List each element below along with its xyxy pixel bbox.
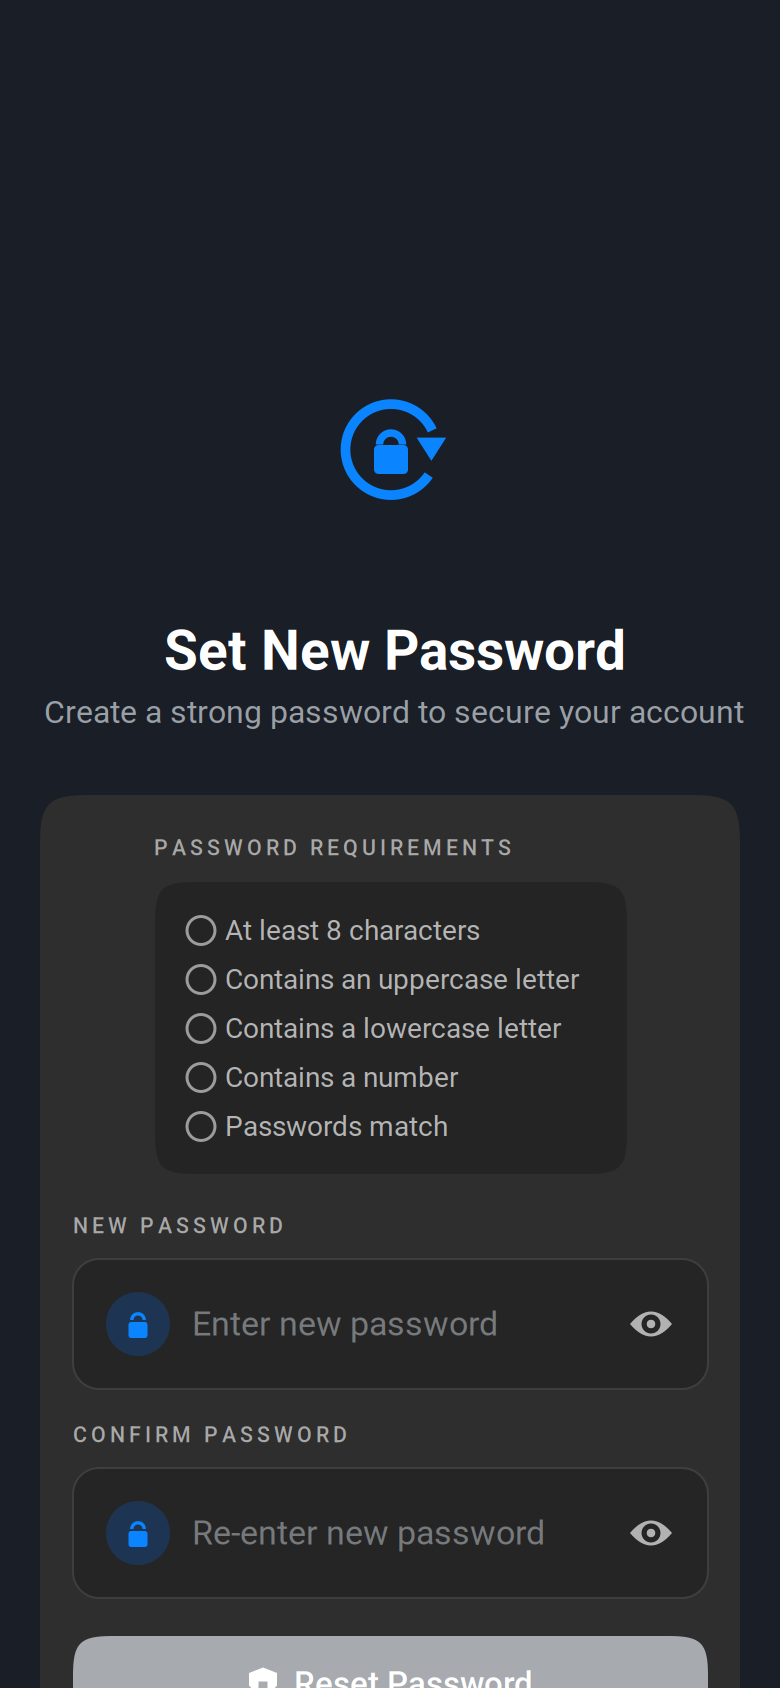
staticText: Re-enter new password <box>192 1513 545 1553</box>
button[interactable]: Show confirm password <box>622 1504 680 1562</box>
staticText: Contains a lowercase letter <box>225 1012 561 1045</box>
staticText: At least 8 characters <box>225 914 480 947</box>
staticText: Contains an uppercase letter <box>225 963 579 996</box>
staticText: Enter new password <box>192 1304 498 1344</box>
button[interactable]: Show new password <box>622 1295 680 1353</box>
staticText: P A S S W O R D R E Q U I R E M E N T S <box>154 835 511 860</box>
staticText: Contains a number <box>225 1061 458 1094</box>
button[interactable]: Reset Password <box>73 1636 708 1688</box>
staticText: Set New Password <box>164 619 626 683</box>
staticText: N E W P A S S W O R D <box>73 1213 283 1238</box>
staticText: Create a strong password to secure your … <box>44 693 744 731</box>
staticText: Passwords match <box>225 1110 448 1143</box>
staticText: C O N F I R M P A S S W O R D <box>73 1422 347 1447</box>
staticText: Reset Password <box>294 1665 533 1688</box>
